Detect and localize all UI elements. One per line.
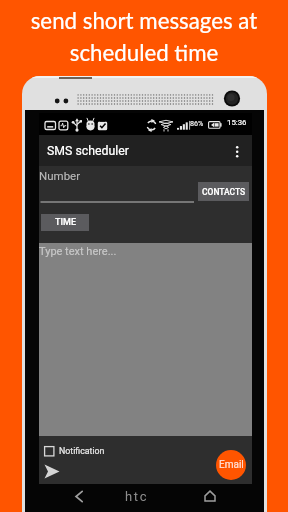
staticText: Email	[219, 459, 244, 471]
button[interactable]: More options	[231, 135, 245, 166]
staticText: SMS scheduler	[47, 144, 129, 158]
button[interactable]: TIME	[41, 214, 89, 231]
button[interactable]: Email	[216, 450, 246, 480]
staticText: 15:36	[227, 118, 247, 127]
staticText: CONTACTS	[202, 187, 246, 197]
button[interactable]: Back	[63, 484, 95, 510]
staticText: send short messages at scheduled time	[0, 7, 288, 66]
staticText: Type text here...	[39, 245, 117, 258]
staticText: Notification	[59, 446, 105, 456]
staticText: 86%	[190, 119, 204, 127]
staticText: Number	[39, 169, 81, 182]
button[interactable]: Notification	[44, 445, 105, 457]
staticText: TIME	[55, 217, 76, 228]
staticText: htc	[125, 489, 149, 504]
button[interactable]: CONTACTS	[198, 182, 249, 201]
button[interactable]: Send	[43, 463, 61, 481]
button[interactable]: Home	[194, 484, 226, 510]
button[interactable]: Type text here...	[39, 243, 252, 436]
